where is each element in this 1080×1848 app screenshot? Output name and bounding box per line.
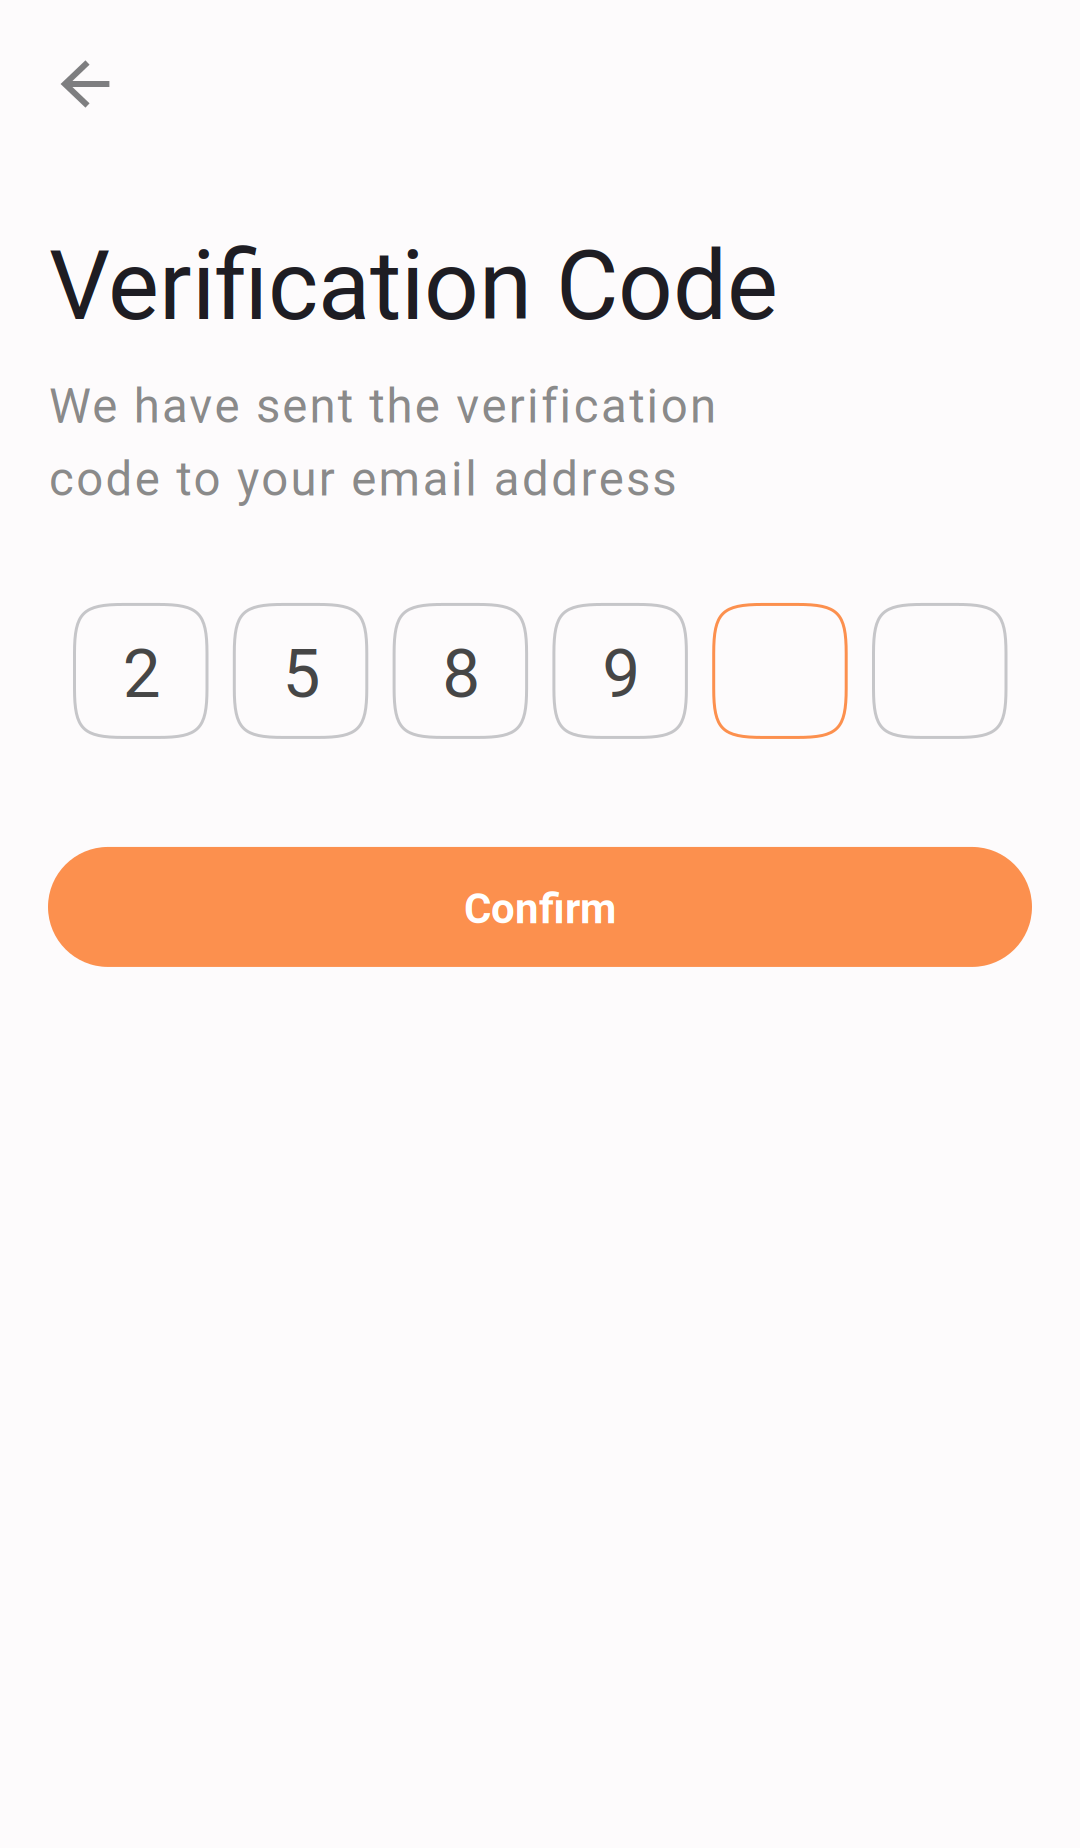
button[interactable]: Back bbox=[0, 0, 112, 108]
staticText: Confirm bbox=[464, 884, 616, 933]
button[interactable]: Empty digit field bbox=[712, 603, 848, 739]
staticText: 9 bbox=[602, 634, 640, 713]
staticText: 5 bbox=[283, 634, 321, 713]
staticText: Verification Code bbox=[49, 230, 778, 342]
button[interactable]: Digit 8 bbox=[393, 603, 528, 739]
button[interactable]: Digit 9 bbox=[552, 603, 688, 739]
staticText: 8 bbox=[442, 634, 480, 713]
button[interactable]: Empty digit field bbox=[872, 603, 1007, 739]
button[interactable]: Confirm bbox=[48, 847, 1032, 967]
staticText: 2 bbox=[123, 634, 161, 713]
button[interactable]: Digit 5 bbox=[233, 603, 368, 739]
staticText: We have sent the verification code to yo… bbox=[49, 378, 716, 507]
button[interactable]: Digit 2 bbox=[73, 603, 208, 739]
